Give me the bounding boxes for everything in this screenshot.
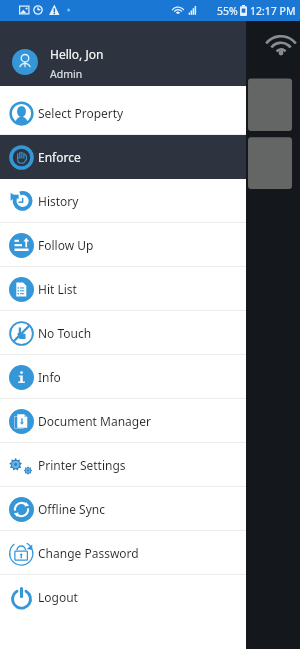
button[interactable]: Logout bbox=[0, 575, 246, 619]
staticText: 55% bbox=[217, 4, 238, 18]
staticText: History bbox=[38, 193, 79, 209]
button[interactable]: Info bbox=[0, 355, 246, 399]
staticText: Select Property bbox=[38, 105, 124, 121]
staticText: Hello, Jon bbox=[50, 46, 104, 62]
button[interactable]: Printer Settings bbox=[0, 443, 246, 487]
staticText: Info bbox=[38, 369, 61, 385]
button[interactable]: No Touch bbox=[0, 311, 246, 355]
button[interactable]: Hello, Jon bbox=[0, 21, 246, 86]
staticText: Logout bbox=[38, 589, 78, 605]
staticText: Enforce bbox=[38, 149, 81, 165]
staticText: Printer Settings bbox=[38, 457, 126, 473]
button[interactable]: Change Password bbox=[0, 531, 246, 575]
staticText: 12:17 PM bbox=[250, 4, 296, 18]
staticText: Document Manager bbox=[38, 413, 151, 429]
button[interactable]: Document Manager bbox=[0, 399, 246, 443]
button[interactable]: History bbox=[0, 179, 246, 223]
staticText: Follow Up bbox=[38, 237, 94, 253]
button[interactable]: Follow Up bbox=[0, 223, 246, 267]
button[interactable]: Select Property bbox=[0, 91, 246, 135]
button[interactable]: Enforce bbox=[0, 135, 246, 179]
button[interactable]: Offline Sync bbox=[0, 487, 246, 531]
staticText: Admin bbox=[50, 67, 83, 81]
staticText: Change Password bbox=[38, 545, 139, 561]
staticText: Hit List bbox=[38, 281, 77, 297]
button[interactable]: Hit List bbox=[0, 267, 246, 311]
staticText: No Touch bbox=[38, 325, 92, 341]
staticText: Offline Sync bbox=[38, 501, 106, 517]
